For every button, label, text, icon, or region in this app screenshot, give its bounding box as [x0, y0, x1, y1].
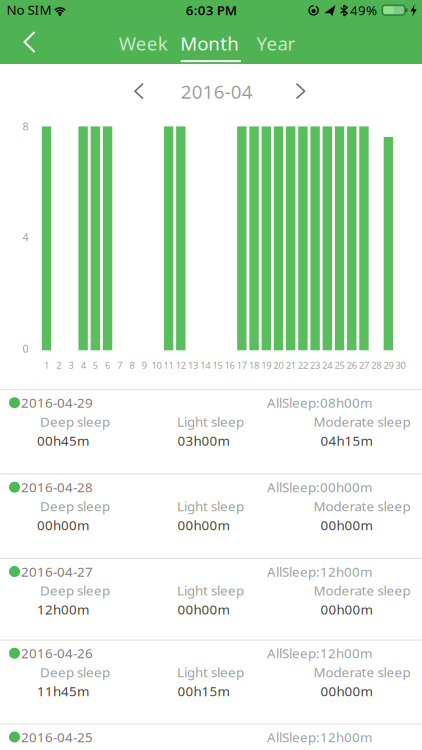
staticText: Light sleep [177, 497, 244, 515]
staticText: 22 [298, 359, 308, 371]
staticText: AllSleep:12h00m [267, 644, 372, 662]
staticText: 2016-04-27 [21, 563, 93, 580]
staticText: 11h45m [37, 682, 89, 700]
staticText: Light sleep [177, 663, 244, 681]
staticText: 21 [286, 359, 296, 371]
staticText: AllSleep:12h00m [267, 728, 372, 746]
staticText: 4 [22, 230, 28, 244]
staticText: AllSleep:08h00m [267, 394, 372, 411]
staticText: 28 [371, 359, 381, 371]
staticText: 16 [225, 359, 235, 371]
staticText: 24 [322, 359, 332, 371]
staticText: AllSleep:00h00m [267, 478, 372, 496]
staticText: 27 [359, 359, 369, 371]
staticText: 00h15m [177, 682, 229, 700]
staticText: 2016-04-25 [21, 728, 93, 746]
staticText: Moderate sleep [313, 663, 410, 681]
staticText: 23 [310, 359, 320, 371]
staticText: Light sleep [177, 581, 244, 599]
staticText: 2016-04-29 [21, 394, 93, 411]
staticText: Moderate sleep [313, 413, 410, 430]
staticText: No SIM [6, 1, 51, 18]
staticText: 2016-04 [181, 79, 253, 104]
staticText: 29 [383, 359, 393, 371]
staticText: 2 [56, 359, 61, 371]
staticText: 15 [212, 359, 222, 371]
staticText: 00h00m [320, 600, 372, 618]
staticText: 2016-04-28 [21, 478, 93, 496]
staticText: 7 [117, 359, 122, 371]
staticText: AllSleep:12h00m [267, 563, 372, 580]
staticText: 17 [237, 359, 247, 371]
staticText: 10 [151, 359, 161, 371]
staticText: 20 [273, 359, 283, 371]
staticText: 14 [200, 359, 210, 371]
staticText: Week [119, 31, 168, 56]
staticText: Deep sleep [40, 663, 110, 681]
staticText: 6:03 PM [186, 1, 237, 19]
staticText: Moderate sleep [313, 497, 410, 515]
staticText: 25 [334, 359, 344, 371]
staticText: 13 [188, 359, 198, 371]
staticText: 8 [22, 119, 28, 133]
staticText: 0 [22, 342, 28, 356]
staticText: 00h00m [320, 682, 372, 700]
staticText: 00h00m [320, 516, 372, 534]
staticText: Deep sleep [40, 413, 110, 430]
staticText: 00h00m [177, 516, 229, 534]
button[interactable] [278, 69, 322, 113]
staticText: 12h00m [37, 600, 89, 618]
staticText: 4 [81, 359, 86, 371]
staticText: 00h45m [37, 432, 89, 449]
staticText: 00h00m [37, 516, 89, 534]
staticText: 8 [129, 359, 134, 371]
staticText: 3 [68, 359, 73, 371]
staticText: 26 [347, 359, 357, 371]
staticText: Light sleep [177, 413, 244, 430]
staticText: 5 [93, 359, 98, 371]
staticText: 1 [44, 359, 49, 371]
staticText: 6 [105, 359, 110, 371]
button[interactable]: Month [173, 22, 247, 64]
button[interactable]: Week [108, 22, 178, 64]
staticText: Deep sleep [40, 497, 110, 515]
button[interactable] [8, 21, 52, 63]
staticText: 11 [164, 359, 174, 371]
staticText: Deep sleep [40, 581, 110, 599]
staticText: 04h15m [320, 432, 372, 449]
staticText: 2016-04-26 [21, 644, 93, 662]
button[interactable] [117, 69, 161, 113]
staticText: 12 [176, 359, 186, 371]
staticText: 00h00m [177, 600, 229, 618]
staticText: 49% [350, 1, 377, 19]
staticText: 03h00m [177, 432, 229, 449]
staticText: 19 [261, 359, 271, 371]
button[interactable]: Year [244, 22, 308, 64]
staticText: 9 [142, 359, 147, 371]
staticText: 18 [249, 359, 259, 371]
staticText: 30 [396, 359, 406, 371]
staticText: Month [180, 31, 239, 56]
staticText: Moderate sleep [313, 581, 410, 599]
staticText: Year [256, 31, 295, 56]
